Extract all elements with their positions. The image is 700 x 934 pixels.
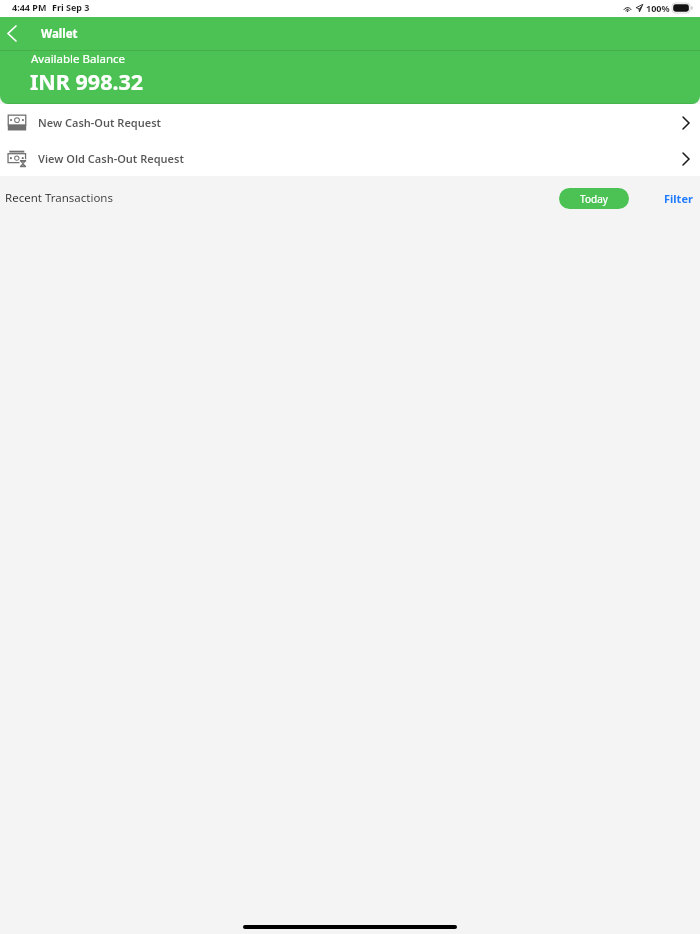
staticText: 4:44 PM — [12, 1, 47, 13]
staticText: Available Balance — [31, 51, 126, 67]
staticText: Filter — [664, 191, 693, 206]
staticText: Fri Sep 3 — [52, 1, 90, 13]
staticText: 100% — [646, 2, 670, 14]
button[interactable]: Filter — [662, 187, 694, 209]
button[interactable]: New Cash-Out Request — [0, 104, 700, 140]
staticText: New Cash-Out Request — [38, 115, 162, 130]
staticText: Recent Transactions — [5, 190, 113, 206]
staticText: View Old Cash-Out Request — [38, 151, 184, 166]
staticText: Wallet — [41, 26, 78, 42]
button[interactable]: View Old Cash-Out Request — [0, 140, 700, 176]
staticText: INR 998.32 — [30, 67, 144, 96]
staticText: Today — [580, 192, 608, 206]
button[interactable]: Back — [0, 17, 30, 50]
button[interactable]: Today — [559, 188, 629, 209]
